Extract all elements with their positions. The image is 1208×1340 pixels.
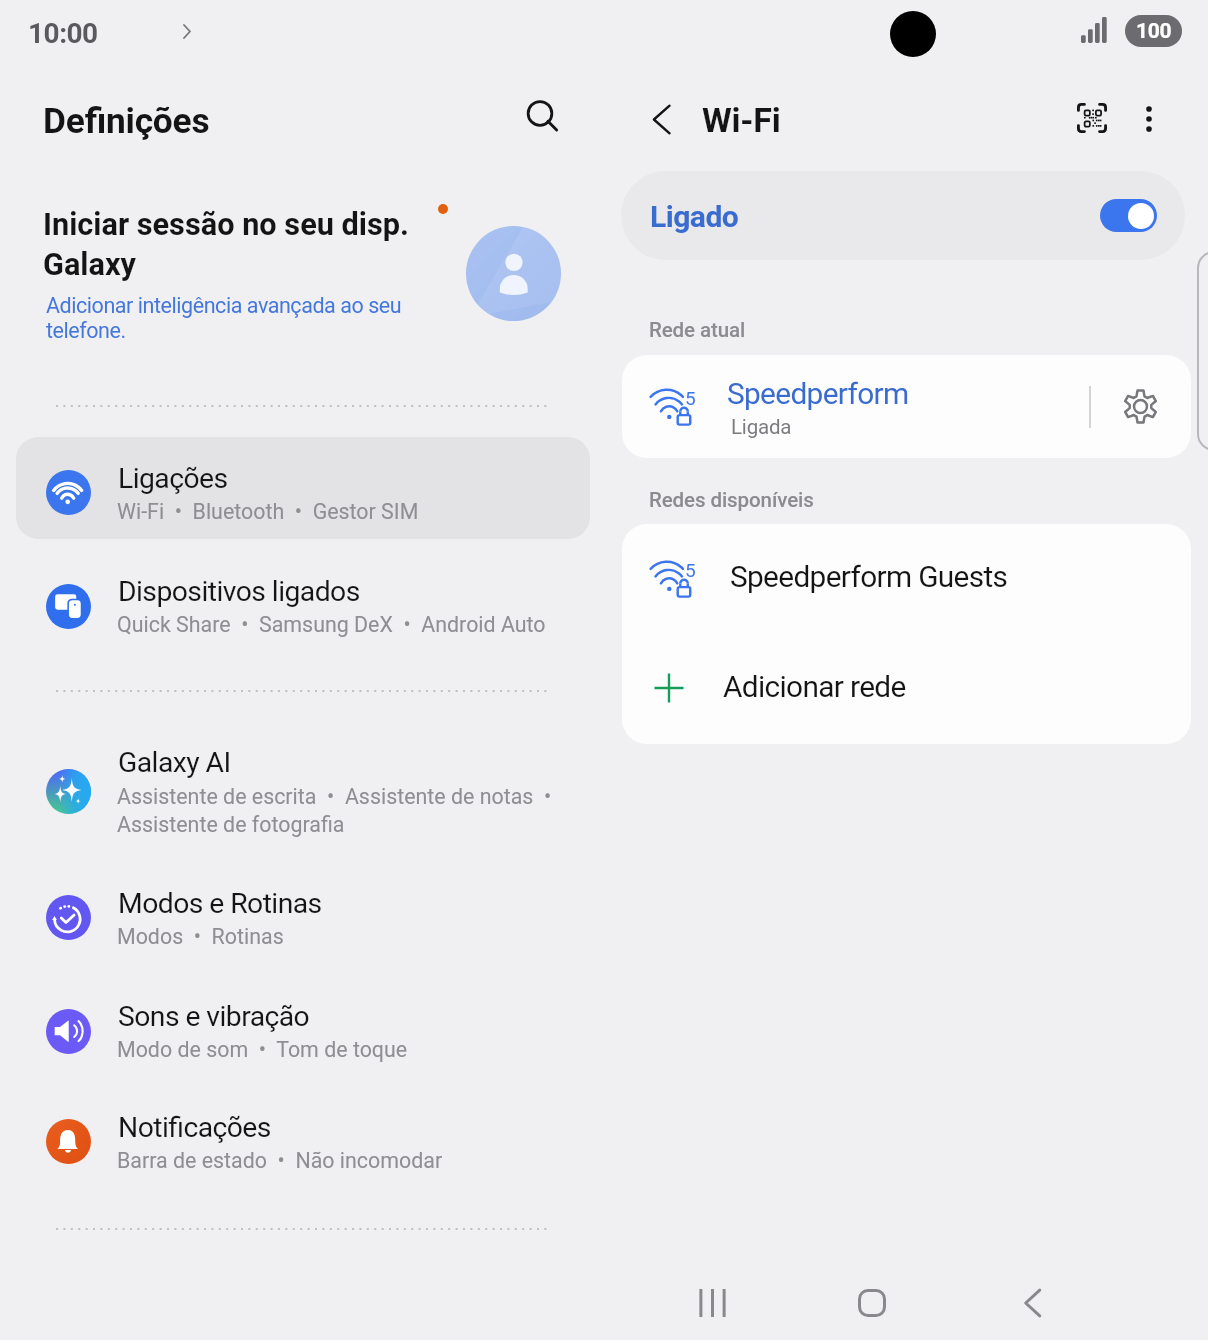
staticText: Definições — [43, 100, 210, 141]
staticText: 10:00 — [28, 17, 98, 50]
button[interactable] — [16, 442, 590, 544]
staticText: Iniciar sessão no seu disp. — [43, 207, 409, 243]
staticText: Adicionar rede — [723, 669, 906, 704]
staticText: Galaxy — [43, 247, 136, 283]
button[interactable] — [16, 555, 590, 657]
button[interactable]: 5 — [622, 355, 1191, 458]
staticText: Ligada — [731, 415, 792, 439]
staticText: Galaxy AI — [118, 746, 231, 779]
button[interactable]: Network settings — [1110, 376, 1170, 436]
staticText: Adicionar inteligência avançada ao seu t… — [46, 293, 418, 344]
button[interactable] — [16, 740, 590, 842]
button[interactable]: Scan QR code — [1062, 88, 1122, 148]
button[interactable]: 5 — [622, 524, 1191, 634]
staticText: Modo de som • Tom de toque — [117, 1037, 408, 1062]
staticText: Sons e vibração — [118, 1000, 310, 1033]
staticText: 5 — [685, 387, 696, 409]
staticText: Assistente de fotografia — [117, 812, 345, 837]
button[interactable]: Recent apps — [683, 1274, 741, 1332]
button[interactable] — [16, 980, 590, 1082]
button[interactable]: Back — [1004, 1274, 1062, 1332]
staticText: Wi-Fi — [702, 100, 781, 140]
button[interactable]: Search — [513, 86, 573, 146]
staticText: Rede atual — [649, 318, 746, 342]
staticText: Speedperform — [727, 376, 909, 411]
staticText: Assistente de escrita • Assistente de no… — [117, 784, 552, 809]
staticText: Modos e Rotinas — [118, 887, 322, 920]
staticText: Quick Share • Samsung DeX • Android Auto — [117, 612, 546, 637]
button[interactable] — [16, 1091, 590, 1193]
staticText: Barra de estado • Não incomodar — [117, 1148, 443, 1173]
staticText: Wi-Fi • Bluetooth • Gestor SIM — [117, 499, 419, 524]
button[interactable]: Samsung account — [466, 226, 561, 321]
staticText: Modos • Rotinas — [117, 924, 284, 949]
button[interactable]: Home — [843, 1274, 901, 1332]
staticText: Redes disponíveis — [649, 488, 814, 512]
button[interactable]: More options — [1119, 89, 1179, 149]
staticText: Notificações — [118, 1111, 271, 1144]
button[interactable]: Navigate up — [632, 90, 690, 148]
button[interactable] — [16, 866, 590, 968]
staticText: Dispositivos ligados — [118, 575, 360, 608]
staticText: 5 — [685, 559, 696, 581]
staticText: 100 — [1136, 19, 1172, 44]
button[interactable]: Ligado — [621, 171, 1185, 260]
staticText: Ligado — [650, 199, 739, 234]
staticText: Ligações — [118, 462, 228, 495]
button[interactable]: Adicionar rede — [622, 634, 1191, 744]
staticText: Speedperform Guests — [730, 559, 1008, 594]
